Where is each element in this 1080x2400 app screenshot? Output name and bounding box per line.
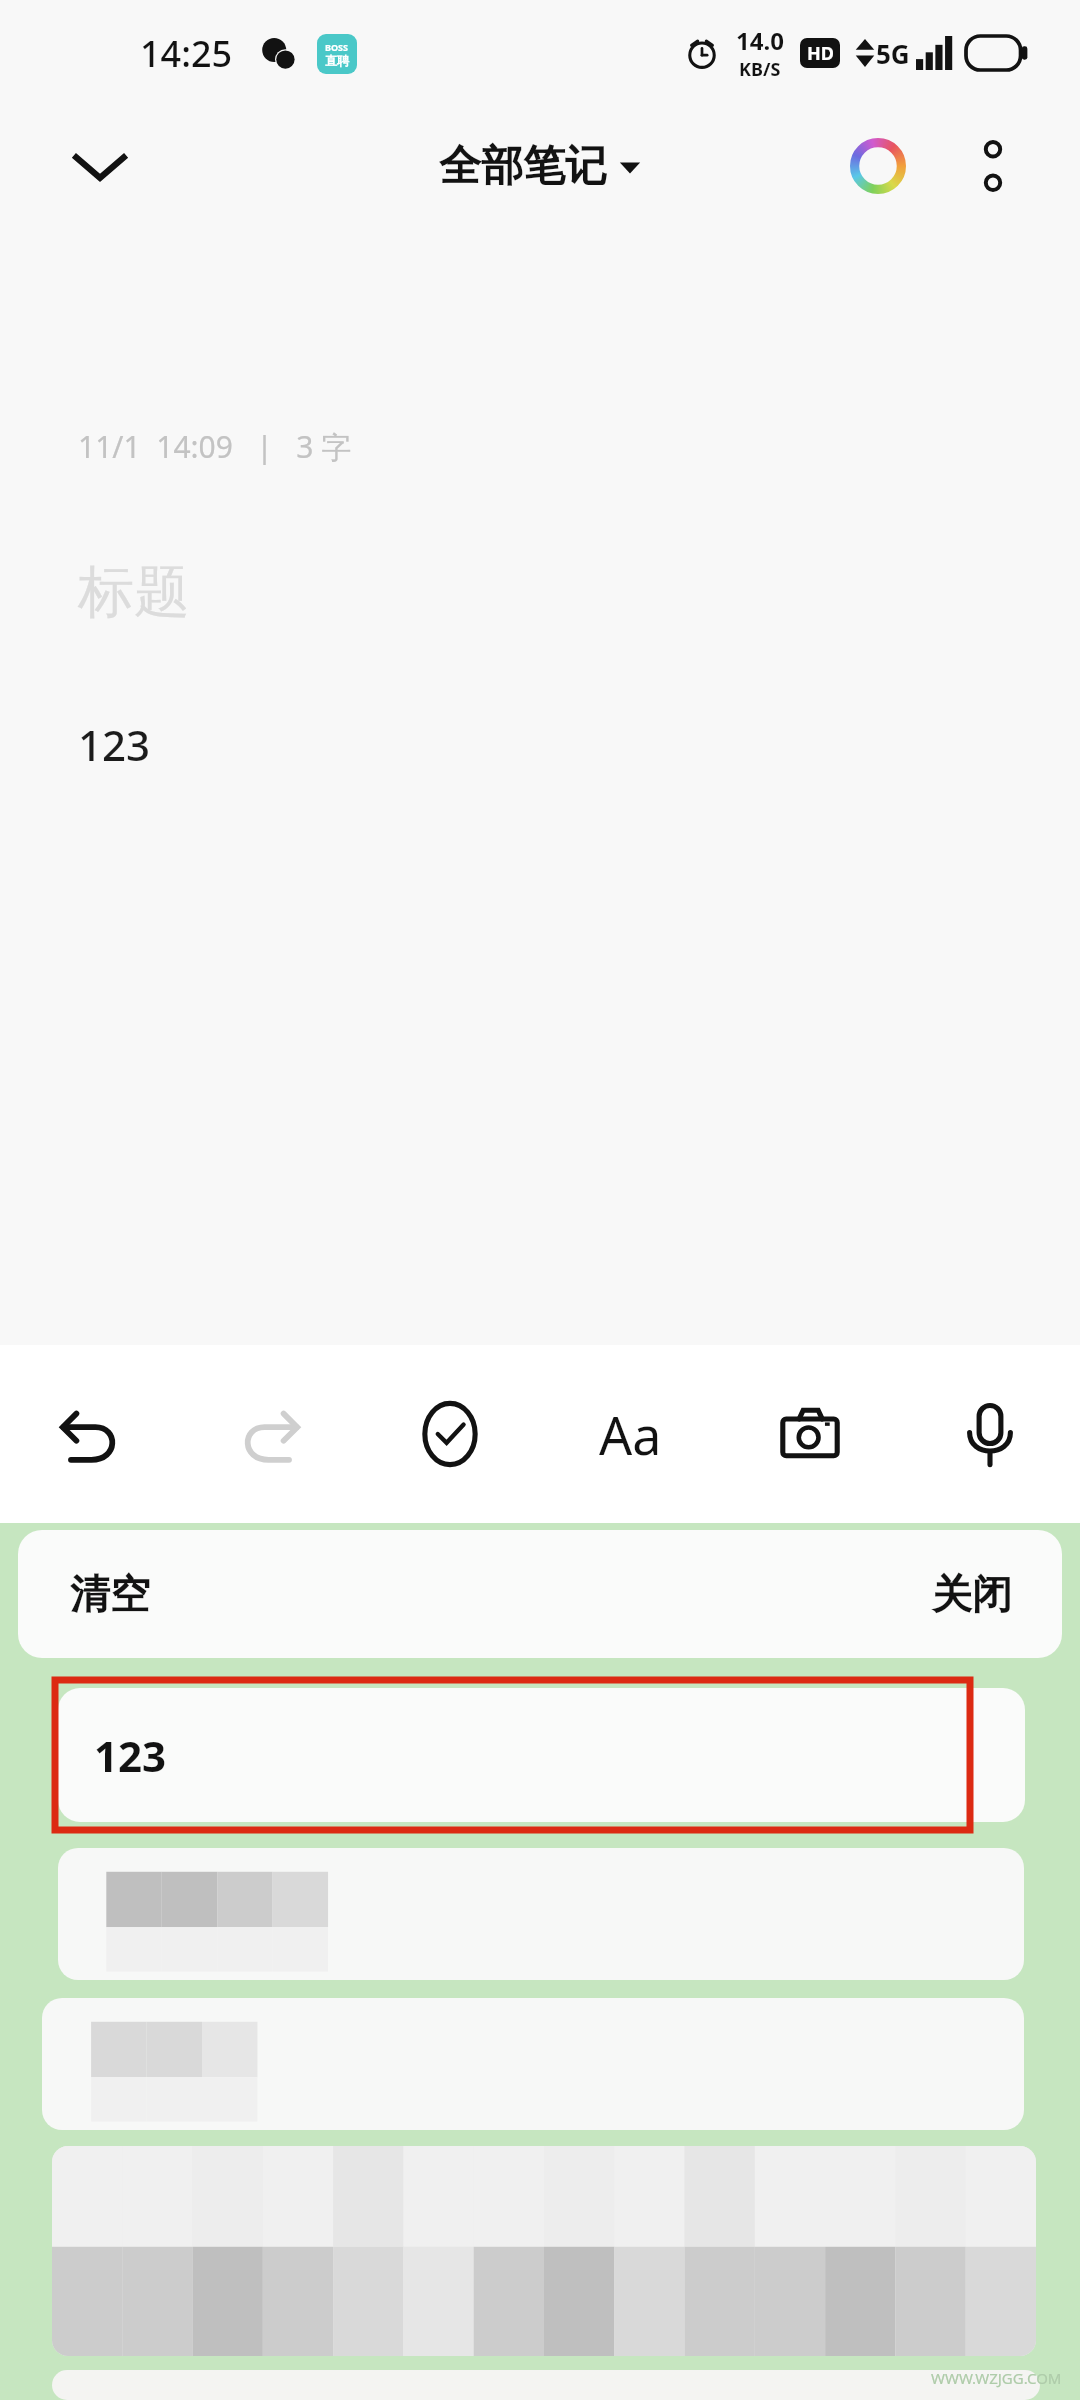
staticText: 14:25 [140,29,233,78]
button[interactable]: 全部笔记 [439,140,641,193]
button[interactable]: Theme [836,124,920,208]
button[interactable] [58,1848,1024,1980]
staticText: 14.0 [736,24,784,57]
button[interactable]: More options [950,123,1036,209]
staticText: Aa [599,1399,662,1470]
button[interactable]: 关闭 [932,1530,1062,1658]
button[interactable]: Redo [180,1345,360,1523]
button[interactable]: Aa [540,1345,720,1523]
staticText: 全部笔记 [439,140,607,193]
button[interactable]: Camera [720,1345,900,1523]
button[interactable]: Todo [360,1345,540,1523]
staticText: 清空 [70,1569,150,1619]
staticText: BOSS [325,41,349,53]
button[interactable] [42,1998,1024,2130]
button[interactable] [52,2146,1036,2356]
staticText: 11/1 14:09 | 3 字 [78,426,352,467]
button[interactable]: 123 [58,1688,1025,1822]
staticText: 关闭 [932,1569,1012,1619]
staticText: 5G [876,36,910,71]
button[interactable]: Undo [0,1345,180,1523]
button[interactable]: Voice [900,1345,1080,1523]
staticText: HD [807,41,834,66]
staticText: 123 [94,1727,167,1784]
staticText: WWW.WZJGG.COM [931,2368,1062,2388]
staticText: KB/S [739,57,781,82]
button[interactable]: Collapse [54,120,146,212]
button[interactable] [52,2370,1040,2400]
staticText: 直聘 [325,53,349,68]
button[interactable]: 清空 [18,1530,150,1658]
staticText: 123 [78,716,151,773]
staticText: 标题 [78,557,190,628]
